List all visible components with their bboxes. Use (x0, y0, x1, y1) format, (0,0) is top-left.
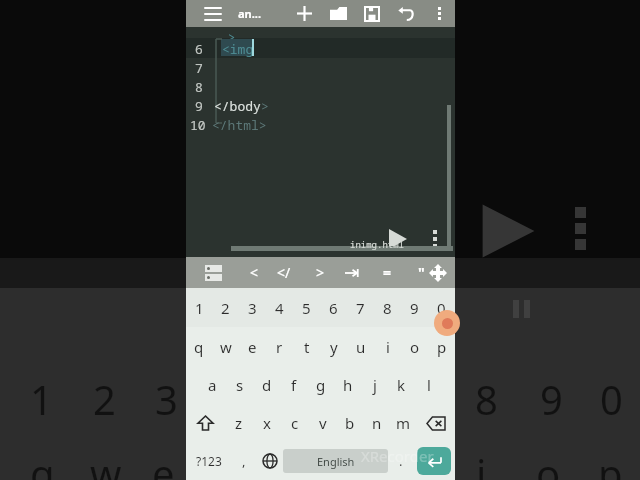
button[interactable]: w (212, 327, 239, 366)
button[interactable]: z (225, 404, 253, 442)
button[interactable]: u (347, 327, 374, 366)
staticText: l (427, 375, 431, 395)
staticText: h (343, 375, 353, 395)
staticText: 6 (195, 40, 203, 58)
staticText: p (598, 446, 623, 480)
button[interactable]: 1 (186, 288, 212, 327)
button[interactable]: n (363, 404, 390, 442)
staticText: 7 (356, 298, 365, 318)
button[interactable]: d (253, 366, 280, 404)
button[interactable]: f (280, 366, 307, 404)
button[interactable]: 7 (347, 288, 374, 327)
staticText: ?123 (196, 453, 222, 469)
staticText: n (372, 413, 382, 433)
staticText: 0 (437, 298, 446, 318)
button[interactable]: = (374, 257, 400, 288)
staticText: " (418, 263, 425, 282)
staticText: b (345, 413, 355, 433)
button[interactable]: 0 (428, 288, 455, 327)
button[interactable]: , (231, 442, 256, 480)
button[interactable]: o (401, 327, 428, 366)
button[interactable]: k (388, 366, 415, 404)
button[interactable]: Menu (200, 0, 226, 27)
button[interactable]: Open (324, 0, 352, 27)
staticText: z (235, 413, 243, 433)
button[interactable]: ?123 (186, 442, 231, 480)
staticText: e (152, 446, 175, 480)
staticText: y (330, 337, 338, 357)
button[interactable]: c (281, 404, 309, 442)
button[interactable]: 8 (374, 288, 401, 327)
button[interactable]: Save (358, 0, 386, 27)
button[interactable]: 6 (320, 288, 347, 327)
staticText: > (316, 263, 325, 282)
button[interactable]: 5 (293, 288, 320, 327)
button[interactable]: q (186, 327, 212, 366)
button[interactable]: v (309, 404, 336, 442)
staticText: </body (214, 97, 261, 115)
staticText: 8 (383, 298, 392, 318)
button[interactable]: j (361, 366, 388, 404)
button[interactable]: New (290, 0, 318, 27)
staticText: an... (238, 6, 262, 21)
button[interactable]: i (374, 327, 401, 366)
button[interactable]: l (415, 366, 442, 404)
button[interactable]: Tab (338, 257, 366, 288)
button[interactable]: 3 (239, 288, 266, 327)
button[interactable]: y (320, 327, 347, 366)
button[interactable]: Backspace (417, 404, 455, 442)
button[interactable]: h (334, 366, 361, 404)
button[interactable]: 9 (401, 288, 428, 327)
staticText: < (250, 263, 259, 282)
button[interactable]: g (307, 366, 334, 404)
staticText: <img (222, 40, 254, 58)
button[interactable]: < (240, 257, 268, 288)
staticText: i (386, 337, 390, 357)
button[interactable]: x (253, 404, 281, 442)
staticText: " (508, 296, 521, 337)
button[interactable]: More (422, 223, 448, 255)
button[interactable]: e (239, 327, 266, 366)
staticText: j (373, 375, 377, 395)
staticText: q (30, 446, 55, 480)
button[interactable]: </ (270, 257, 298, 288)
staticText: d (262, 375, 272, 395)
button[interactable]: p (428, 327, 455, 366)
staticText: XRecorder (361, 446, 434, 466)
staticText: e (248, 337, 257, 357)
staticText: 3 (155, 372, 178, 426)
button[interactable]: a (199, 366, 226, 404)
button[interactable]: Change language (256, 442, 283, 480)
staticText: </html> (212, 116, 267, 134)
staticText: a (208, 375, 217, 395)
staticText: i (476, 446, 487, 480)
button[interactable]: s (226, 366, 253, 404)
button[interactable]: English (283, 449, 388, 473)
button[interactable]: an... (238, 0, 282, 27)
staticText: w (90, 446, 122, 480)
button[interactable]: Enter (417, 447, 451, 475)
staticText: m (396, 413, 411, 433)
button[interactable]: . (388, 442, 413, 480)
button[interactable]: More options (426, 0, 452, 27)
button[interactable]: 2 (212, 288, 239, 327)
button[interactable]: Run (382, 223, 414, 255)
button[interactable]: Clipboard (198, 257, 228, 288)
button[interactable]: Undo (392, 0, 420, 27)
staticText: inimg.html (350, 238, 405, 250)
button[interactable]: b (336, 404, 363, 442)
button[interactable]: Shift (186, 404, 225, 442)
button[interactable]: r (266, 327, 293, 366)
button[interactable]: " (408, 257, 434, 288)
staticText: 10 (190, 116, 206, 134)
staticText: 0 (600, 372, 623, 426)
button[interactable]: Move cursor (424, 257, 452, 288)
button[interactable]: m (390, 404, 417, 442)
staticText: g (316, 375, 326, 395)
button[interactable]: > (306, 257, 334, 288)
button[interactable]: t (293, 327, 320, 366)
button[interactable]: 4 (266, 288, 293, 327)
staticText: 4 (275, 298, 284, 318)
staticText: s (236, 375, 244, 395)
